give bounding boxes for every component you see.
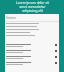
staticText: amet consectetur bbox=[19, 5, 46, 9]
staticText: adipiscing elit bbox=[22, 9, 43, 13]
button[interactable]: More bbox=[5, 48, 59, 54]
staticText: Lorem ipsum dolor sit bbox=[16, 1, 49, 5]
button[interactable]: More bbox=[5, 54, 59, 60]
staticText: Section bbox=[6, 16, 16, 20]
button[interactable]: More bbox=[5, 42, 59, 48]
button[interactable]: More bbox=[5, 60, 59, 66]
